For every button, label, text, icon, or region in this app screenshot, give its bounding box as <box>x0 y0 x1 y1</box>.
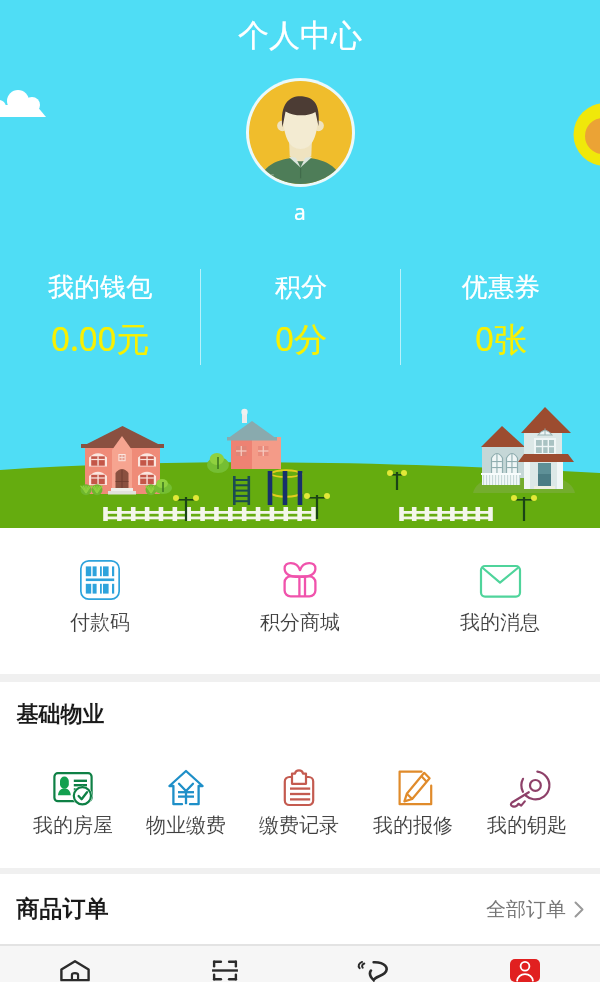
staticText: 积分商城 <box>260 610 340 635</box>
button[interactable]: 缴费记录 <box>242 748 356 848</box>
staticText: 个人中心 <box>238 16 362 55</box>
button[interactable]: Scan <box>150 946 300 982</box>
staticText: 缴费记录 <box>259 813 339 838</box>
button[interactable]: 我的钥匙 <box>470 748 584 848</box>
button[interactable]: 我的钱包 <box>0 265 200 365</box>
button[interactable]: Call <box>300 946 450 982</box>
staticText: 基础物业 <box>16 701 104 729</box>
button[interactable]: 物业缴费 <box>129 748 242 848</box>
staticText: 我的钱包 <box>48 271 152 304</box>
button[interactable]: 商品订单 <box>0 874 600 944</box>
staticText: 我的房屋 <box>33 813 113 838</box>
staticText: 我的消息 <box>460 610 540 635</box>
staticText: 0分 <box>275 316 327 361</box>
button[interactable]: 积分商城 <box>200 528 400 674</box>
staticText: 付款码 <box>70 610 130 635</box>
button[interactable]: Home <box>0 946 150 982</box>
staticText: 0张 <box>475 316 527 361</box>
staticText: 我的报修 <box>373 813 453 838</box>
staticText: 商品订单 <box>16 895 108 924</box>
button[interactable]: 我的报修 <box>356 748 470 848</box>
button[interactable]: 优惠券 <box>401 265 600 365</box>
button[interactable]: 积分 <box>201 265 400 365</box>
button[interactable]: 我的房屋 <box>16 748 129 848</box>
button[interactable]: 我的消息 <box>400 528 600 674</box>
button[interactable]: Avatar <box>249 81 352 184</box>
staticText: 积分 <box>275 271 327 304</box>
staticText: 我的钥匙 <box>487 813 567 838</box>
staticText: 全部订单 <box>486 897 566 922</box>
staticText: 优惠券 <box>462 271 540 304</box>
staticText: 物业缴费 <box>146 813 226 838</box>
button[interactable]: Profile <box>450 946 600 982</box>
button[interactable]: 付款码 <box>0 528 200 674</box>
staticText: a <box>294 198 306 227</box>
staticText: 0.00元 <box>51 316 150 361</box>
